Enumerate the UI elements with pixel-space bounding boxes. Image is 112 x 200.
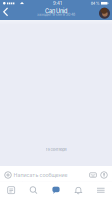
- staticText: Сап Unid: [45, 8, 67, 15]
- staticText: 9:41: [53, 0, 62, 6]
- button[interactable]: Attach: [2, 168, 13, 182]
- button[interactable]: Back: [2, 7, 13, 20]
- button[interactable]: Messages: [45, 181, 67, 200]
- button[interactable]: Menu: [90, 181, 112, 200]
- button[interactable]: News: [0, 181, 22, 200]
- button[interactable]: Keyboard: [87, 168, 98, 182]
- staticText: 84%: [91, 1, 100, 6]
- staticText: заходил 19 сен в 20:48: [37, 12, 75, 17]
- button[interactable]: Open profile: [99, 8, 110, 19]
- staticText: 19 сентября: [45, 147, 66, 152]
- button[interactable]: Voice message: [98, 168, 109, 182]
- button[interactable]: Search: [22, 181, 45, 200]
- staticText: Написать сообщение: [13, 172, 67, 178]
- button[interactable]: Notifications: [67, 181, 90, 200]
